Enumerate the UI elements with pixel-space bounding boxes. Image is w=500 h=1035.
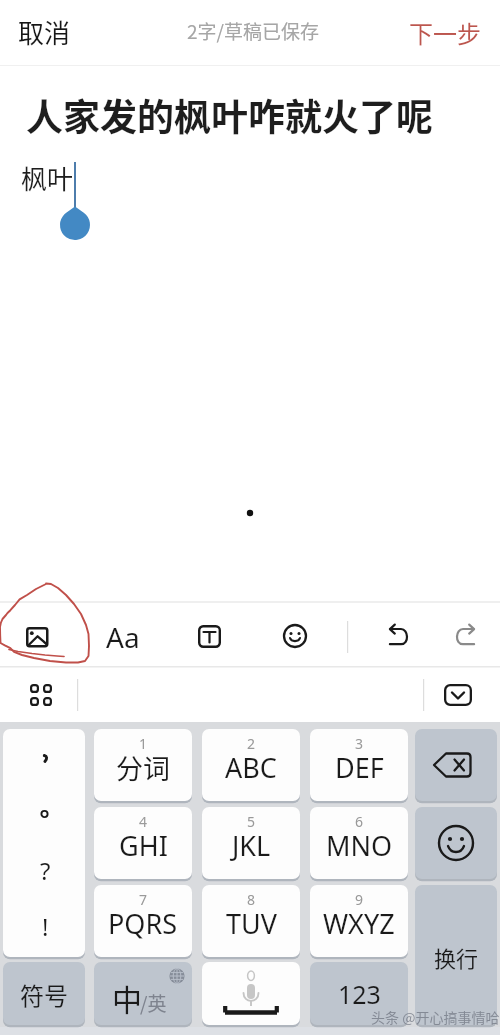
button[interactable]: 9 [310, 885, 408, 960]
staticText: PQRS [108, 905, 178, 942]
staticText: 人家发的枫叶咋就火了呢 [26, 88, 433, 142]
staticText: ABC [225, 749, 277, 786]
button[interactable]: 换行 [415, 885, 497, 1028]
button[interactable]: Insert image [16, 617, 59, 658]
staticText: MNO [326, 827, 393, 864]
staticText: 换行 [434, 941, 479, 973]
staticText: 分词 [116, 748, 170, 787]
button[interactable]: 1 [94, 729, 192, 804]
staticText: DEF [335, 749, 384, 786]
button[interactable]: Keyboard layouts [20, 674, 62, 716]
staticText: WXYZ [323, 905, 395, 942]
staticText: 1 [139, 734, 148, 753]
button[interactable]: Text style [188, 615, 231, 658]
button[interactable]: 3 [310, 729, 408, 804]
button[interactable]: 符号 [3, 962, 85, 1028]
staticText: ? [40, 854, 51, 887]
staticText: TUV [226, 905, 277, 942]
staticText: 头条 @开心搞事情哈 [371, 1007, 500, 1027]
staticText: 符号 [20, 977, 68, 1012]
staticText: 中 [112, 976, 142, 1019]
button[interactable]: Undo [379, 614, 421, 656]
button[interactable]: 4 [94, 807, 192, 882]
staticText: GHI [119, 827, 168, 864]
staticText: 2字/草稿已保存 [187, 17, 319, 45]
staticText: 枫叶 [21, 159, 74, 197]
button[interactable]: 2 [202, 729, 300, 804]
button[interactable]: Aa [101, 616, 145, 656]
button[interactable]: 7 [94, 885, 192, 960]
staticText: 123 [338, 977, 381, 1011]
button[interactable]: 下一步 [407, 7, 483, 58]
button[interactable]: 8 [202, 885, 300, 960]
staticText: 5 [247, 812, 256, 831]
button[interactable]: Emoji [273, 614, 317, 658]
staticText: 2 [247, 734, 256, 753]
staticText: 下一步 [409, 15, 481, 50]
button[interactable]: Hide keyboard [434, 674, 482, 716]
staticText: JKL [232, 827, 271, 864]
button[interactable]: Redo [443, 614, 485, 656]
button[interactable]: Backspace [415, 729, 497, 804]
button[interactable]: Voice input [202, 962, 300, 1028]
button[interactable]: 6 [310, 807, 408, 882]
button[interactable]: 5 [202, 807, 300, 882]
staticText: 7 [139, 890, 148, 909]
button[interactable]: 取消 [16, 5, 73, 59]
button[interactable]: 123 [310, 962, 408, 1028]
staticText: 取消 [18, 13, 71, 51]
staticText: 4 [139, 812, 148, 831]
button[interactable]: ? [3, 729, 85, 960]
staticText: 8 [247, 890, 256, 909]
staticText: /英 [140, 989, 167, 1017]
staticText: 6 [355, 812, 364, 831]
button[interactable]: Emoji keyboard [415, 807, 497, 882]
button[interactable]: 中 [94, 962, 192, 1028]
staticText: 3 [355, 734, 364, 753]
staticText: Aa [106, 618, 140, 656]
staticText: 9 [355, 890, 364, 909]
staticText: ! [42, 910, 49, 943]
